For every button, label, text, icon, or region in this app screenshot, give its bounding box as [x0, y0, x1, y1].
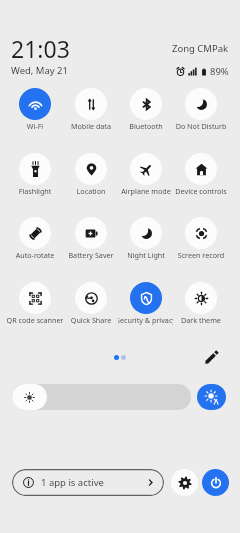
- button[interactable]: Power: [202, 469, 229, 496]
- button[interactable]: Location: [63, 153, 118, 196]
- button[interactable]: Flashlight: [7, 153, 63, 196]
- staticText: Do Not Disturb: [173, 121, 228, 131]
- staticText: Dark theme: [173, 315, 228, 325]
- staticText: Wi-Fi: [7, 121, 63, 131]
- staticText: Security & privacy: [118, 315, 173, 325]
- button[interactable]: 1 app is active: [12, 469, 164, 496]
- staticText: Zong CMPak: [172, 42, 229, 55]
- staticText: 89%: [210, 65, 229, 78]
- staticText: Mobile data: [63, 121, 118, 131]
- staticText: Auto-rotate: [7, 250, 63, 260]
- staticText: 1 app is active: [41, 476, 104, 489]
- button[interactable]: Dark theme: [173, 282, 228, 325]
- button[interactable]: Quick Share: [63, 282, 118, 325]
- button[interactable]: Device controls: [173, 153, 228, 196]
- staticText: 21:03: [11, 33, 70, 64]
- staticText: Flashlight: [7, 186, 63, 196]
- button[interactable]: Edit tiles: [204, 349, 220, 365]
- button[interactable]: Screen record: [173, 217, 228, 260]
- button[interactable]: Mobile data: [63, 88, 118, 131]
- staticText: Airplane mode: [118, 186, 173, 196]
- button[interactable]: QR code scanner: [7, 282, 63, 325]
- staticText: Wed, May 21: [11, 64, 68, 77]
- staticText: Night Light: [118, 250, 173, 260]
- button[interactable]: Brightness: [12, 384, 191, 410]
- staticText: Location: [63, 186, 118, 196]
- button[interactable]: Settings: [171, 469, 198, 496]
- staticText: Quick Share: [63, 315, 118, 325]
- button[interactable]: Do Not Disturb: [173, 88, 228, 131]
- staticText: Device controls: [173, 186, 228, 196]
- button[interactable]: Auto brightness: [197, 384, 226, 410]
- staticText: Bluetooth: [118, 121, 173, 131]
- button[interactable]: Night Light: [118, 217, 173, 260]
- staticText: QR code scanner: [7, 315, 63, 325]
- button[interactable]: Wi-Fi: [7, 88, 63, 131]
- staticText: Battery Saver: [63, 250, 118, 260]
- button[interactable]: Auto-rotate: [7, 217, 63, 260]
- button[interactable]: Security & privacy: [118, 282, 173, 325]
- button[interactable]: Airplane mode: [118, 153, 173, 196]
- button[interactable]: Bluetooth: [118, 88, 173, 131]
- staticText: Screen record: [173, 250, 228, 260]
- button[interactable]: Battery Saver: [63, 217, 118, 260]
